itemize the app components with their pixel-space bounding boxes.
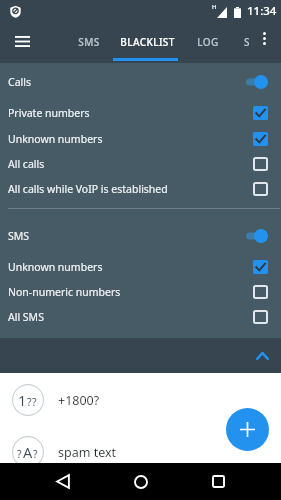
- staticText: S: [244, 35, 250, 49]
- staticText: Non-numeric numbers: [8, 285, 121, 299]
- staticText: H: [212, 3, 217, 11]
- button[interactable]: Back: [44, 463, 81, 500]
- staticText: Unknown numbers: [8, 132, 103, 146]
- staticText: BLACKLIST: [120, 35, 175, 49]
- button[interactable]: Menu: [4, 23, 40, 59]
- staticText: All calls: [8, 157, 45, 171]
- button[interactable]: Unknown numbers: [0, 126, 281, 151]
- staticText: spam text: [58, 444, 117, 461]
- button[interactable]: Private numbers: [0, 100, 281, 125]
- button[interactable]: LOG: [180, 22, 236, 63]
- staticText: ?: [33, 447, 39, 461]
- staticText: 11:34: [247, 3, 277, 19]
- button[interactable]: All calls while VoIP is established: [0, 176, 281, 201]
- staticText: All SMS: [8, 310, 44, 324]
- staticText: SMS: [8, 229, 30, 243]
- button[interactable]: SMS: [63, 22, 115, 63]
- staticText: All calls while VoIP is established: [8, 182, 168, 196]
- staticText: Private numbers: [8, 106, 90, 120]
- button[interactable]: Add: [226, 408, 269, 451]
- button[interactable]: Unknown numbers: [0, 254, 281, 279]
- staticText: LOG: [197, 35, 219, 49]
- staticText: ??: [27, 395, 38, 409]
- staticText: ?: [17, 447, 23, 461]
- button[interactable]: ?: [0, 430, 281, 474]
- button[interactable]: All SMS: [0, 304, 281, 329]
- button[interactable]: 1: [0, 378, 281, 422]
- button[interactable]: SMS: [0, 220, 281, 251]
- staticText: SMS: [78, 35, 100, 49]
- staticText: 1: [18, 390, 27, 410]
- button[interactable]: S: [236, 22, 258, 63]
- button[interactable]: BLACKLIST: [115, 22, 180, 63]
- staticText: +1800?: [58, 392, 100, 409]
- button[interactable]: Calls: [0, 66, 281, 97]
- staticText: A: [23, 442, 33, 462]
- staticText: Calls: [8, 75, 31, 89]
- button[interactable]: Collapse: [241, 338, 281, 373]
- button[interactable]: Non-numeric numbers: [0, 279, 281, 304]
- staticText: Unknown numbers: [8, 260, 103, 274]
- button[interactable]: All calls: [0, 151, 281, 176]
- button[interactable]: Recents: [200, 463, 237, 500]
- button[interactable]: More options: [250, 24, 278, 52]
- button[interactable]: Home: [122, 463, 159, 500]
